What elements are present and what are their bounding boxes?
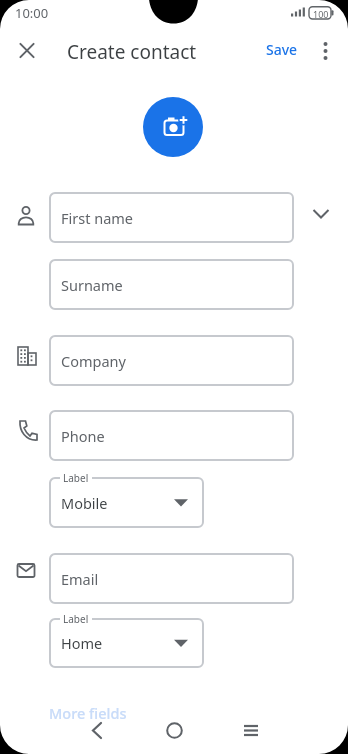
button[interactable] (11, 34, 43, 66)
button[interactable] (230, 712, 272, 748)
staticText: Company (61, 351, 126, 371)
button[interactable]: Surname (49, 259, 294, 310)
button[interactable] (153, 712, 195, 748)
button[interactable] (76, 712, 118, 748)
staticText: First name (61, 208, 134, 228)
button[interactable]: First name (49, 192, 294, 243)
staticText: Email (61, 569, 99, 589)
button[interactable]: Company (49, 335, 294, 386)
button[interactable] (143, 97, 203, 157)
staticText: Create contact (67, 39, 197, 65)
button[interactable]: Home (49, 618, 204, 668)
button[interactable]: Email (49, 553, 294, 604)
staticText: Home (61, 633, 103, 653)
staticText: 100 (313, 8, 329, 20)
staticText: Phone (61, 426, 105, 446)
staticText: More fields (49, 703, 127, 723)
staticText: Label (63, 471, 89, 485)
staticText: 10:00 (15, 4, 49, 22)
staticText: Label (63, 612, 89, 626)
staticText: Save (266, 40, 298, 59)
button[interactable] (312, 36, 340, 64)
staticText: Mobile (61, 493, 108, 513)
button[interactable]: Phone (49, 410, 294, 461)
button[interactable]: More fields (46, 701, 136, 725)
button[interactable]: Mobile (49, 477, 204, 528)
button[interactable]: Save (260, 36, 304, 62)
staticText: Surname (61, 275, 123, 295)
